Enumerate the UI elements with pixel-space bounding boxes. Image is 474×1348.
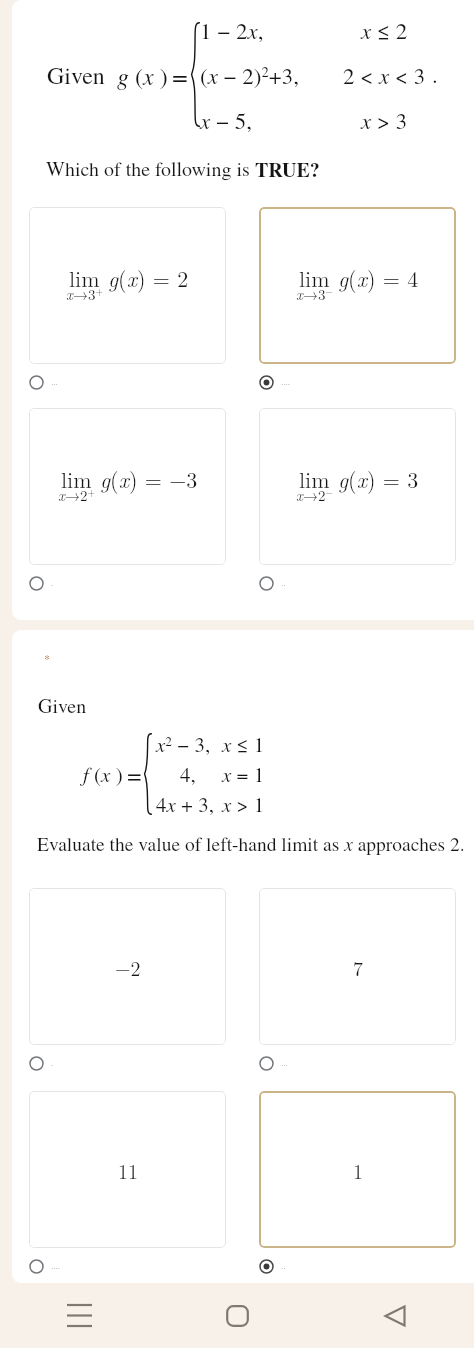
button[interactable]: ... <box>259 1052 288 1074</box>
staticText: . <box>51 1057 54 1069</box>
staticText: .... <box>281 376 291 388</box>
button[interactable]: 11 <box>29 1091 226 1248</box>
button[interactable]: .. <box>259 1255 286 1277</box>
button[interactable]: . <box>29 1052 54 1074</box>
staticText: 4, <box>180 760 196 788</box>
staticText: . <box>51 577 54 589</box>
staticText: 2 < x < 3 <box>343 59 426 90</box>
button[interactable]: . <box>29 572 54 594</box>
staticText: x > 3 <box>361 104 408 135</box>
staticText: −2 <box>115 953 141 981</box>
staticText: Given <box>47 59 105 91</box>
staticText: g(x) = 2 <box>108 262 189 293</box>
staticText: .. <box>281 1260 286 1272</box>
staticText: TRUE? <box>255 155 320 184</box>
staticText: .... <box>51 1260 61 1272</box>
staticText: g(x) = 4 <box>338 262 419 293</box>
staticText: x→2− <box>296 484 333 505</box>
staticText: x ≤ 1 <box>222 730 265 758</box>
staticText: x2 − 3, <box>156 730 211 758</box>
staticText: * <box>44 650 51 666</box>
staticText: lim <box>61 463 92 494</box>
staticText: ... <box>281 1057 288 1069</box>
staticText: x = 1 <box>222 760 265 788</box>
staticText: x→2+ <box>58 484 95 505</box>
button[interactable]: 1 <box>259 1091 456 1248</box>
staticText: (x − 2)2+3, <box>200 59 300 90</box>
button[interactable]: Recent apps <box>0 1283 158 1348</box>
staticText: 7 <box>353 953 363 981</box>
staticText: ... <box>51 376 58 388</box>
staticText: Evaluate the value of left-hand limit as… <box>37 830 465 856</box>
staticText: lim <box>299 463 330 494</box>
staticText: = <box>172 56 188 93</box>
staticText: Given <box>38 692 87 719</box>
button[interactable]: 7 <box>259 888 456 1045</box>
staticText: 11 <box>118 1156 138 1184</box>
staticText: .. <box>281 577 286 589</box>
staticText: 1 − 2x, <box>200 14 264 45</box>
button[interactable]: lim <box>29 408 226 565</box>
button[interactable]: −2 <box>29 888 226 1045</box>
staticText: x→3+ <box>66 283 103 304</box>
staticText: x − 5, <box>200 104 252 135</box>
button[interactable]: .... <box>29 1255 61 1277</box>
staticText: x > 1 <box>222 790 265 818</box>
staticText: = <box>127 757 142 792</box>
button[interactable]: Home <box>158 1283 316 1348</box>
staticText: x→3− <box>296 283 333 304</box>
staticText: Which of the following is <box>46 155 255 182</box>
staticText: g(x) = 3 <box>338 463 419 494</box>
staticText: g(x) = −3 <box>100 463 198 494</box>
staticText: 4x + 3, <box>156 790 214 818</box>
staticText: lim <box>69 262 100 293</box>
button[interactable]: lim <box>259 408 456 565</box>
button[interactable]: ... <box>29 371 58 393</box>
staticText: f (x ) <box>83 760 123 788</box>
staticText: x ≤ 2 <box>361 14 408 45</box>
staticText: g (x ) <box>117 59 168 91</box>
button[interactable]: lim <box>29 207 226 364</box>
staticText: 1 <box>353 1156 363 1184</box>
staticText: lim <box>299 262 330 293</box>
staticText: . <box>432 59 438 90</box>
button[interactable]: .... <box>259 371 291 393</box>
button[interactable]: Back <box>316 1283 474 1348</box>
button[interactable]: lim <box>259 207 456 364</box>
button[interactable]: .. <box>259 572 286 594</box>
